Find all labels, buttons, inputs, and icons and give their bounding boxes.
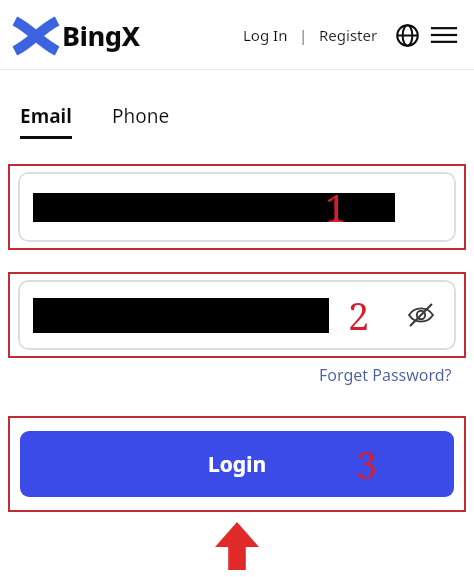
staticText: 2 — [348, 289, 370, 341]
button[interactable]: BingX home — [12, 17, 140, 54]
button[interactable] — [18, 172, 456, 242]
button[interactable]: Log In — [241, 25, 290, 45]
staticText: | — [299, 25, 308, 45]
staticText: Register — [319, 25, 378, 45]
staticText: Phone — [112, 103, 170, 129]
button[interactable]: Menu — [428, 19, 460, 51]
staticText: Forget Password? — [319, 364, 452, 386]
button[interactable]: Login — [20, 431, 454, 497]
button[interactable]: Email — [20, 103, 72, 139]
button[interactable] — [18, 280, 456, 350]
staticText: Login — [208, 450, 267, 479]
button[interactable]: Forget Password? — [319, 364, 452, 386]
staticText: Email — [20, 103, 72, 129]
staticText: Log In — [243, 25, 288, 45]
staticText: 1 — [325, 181, 347, 233]
staticText: BingX — [62, 17, 140, 54]
button[interactable]: Show password — [404, 298, 438, 332]
button[interactable]: Language — [392, 20, 422, 50]
button[interactable]: Phone — [112, 103, 170, 129]
button[interactable]: Register — [317, 25, 380, 45]
staticText: 3 — [356, 438, 378, 490]
